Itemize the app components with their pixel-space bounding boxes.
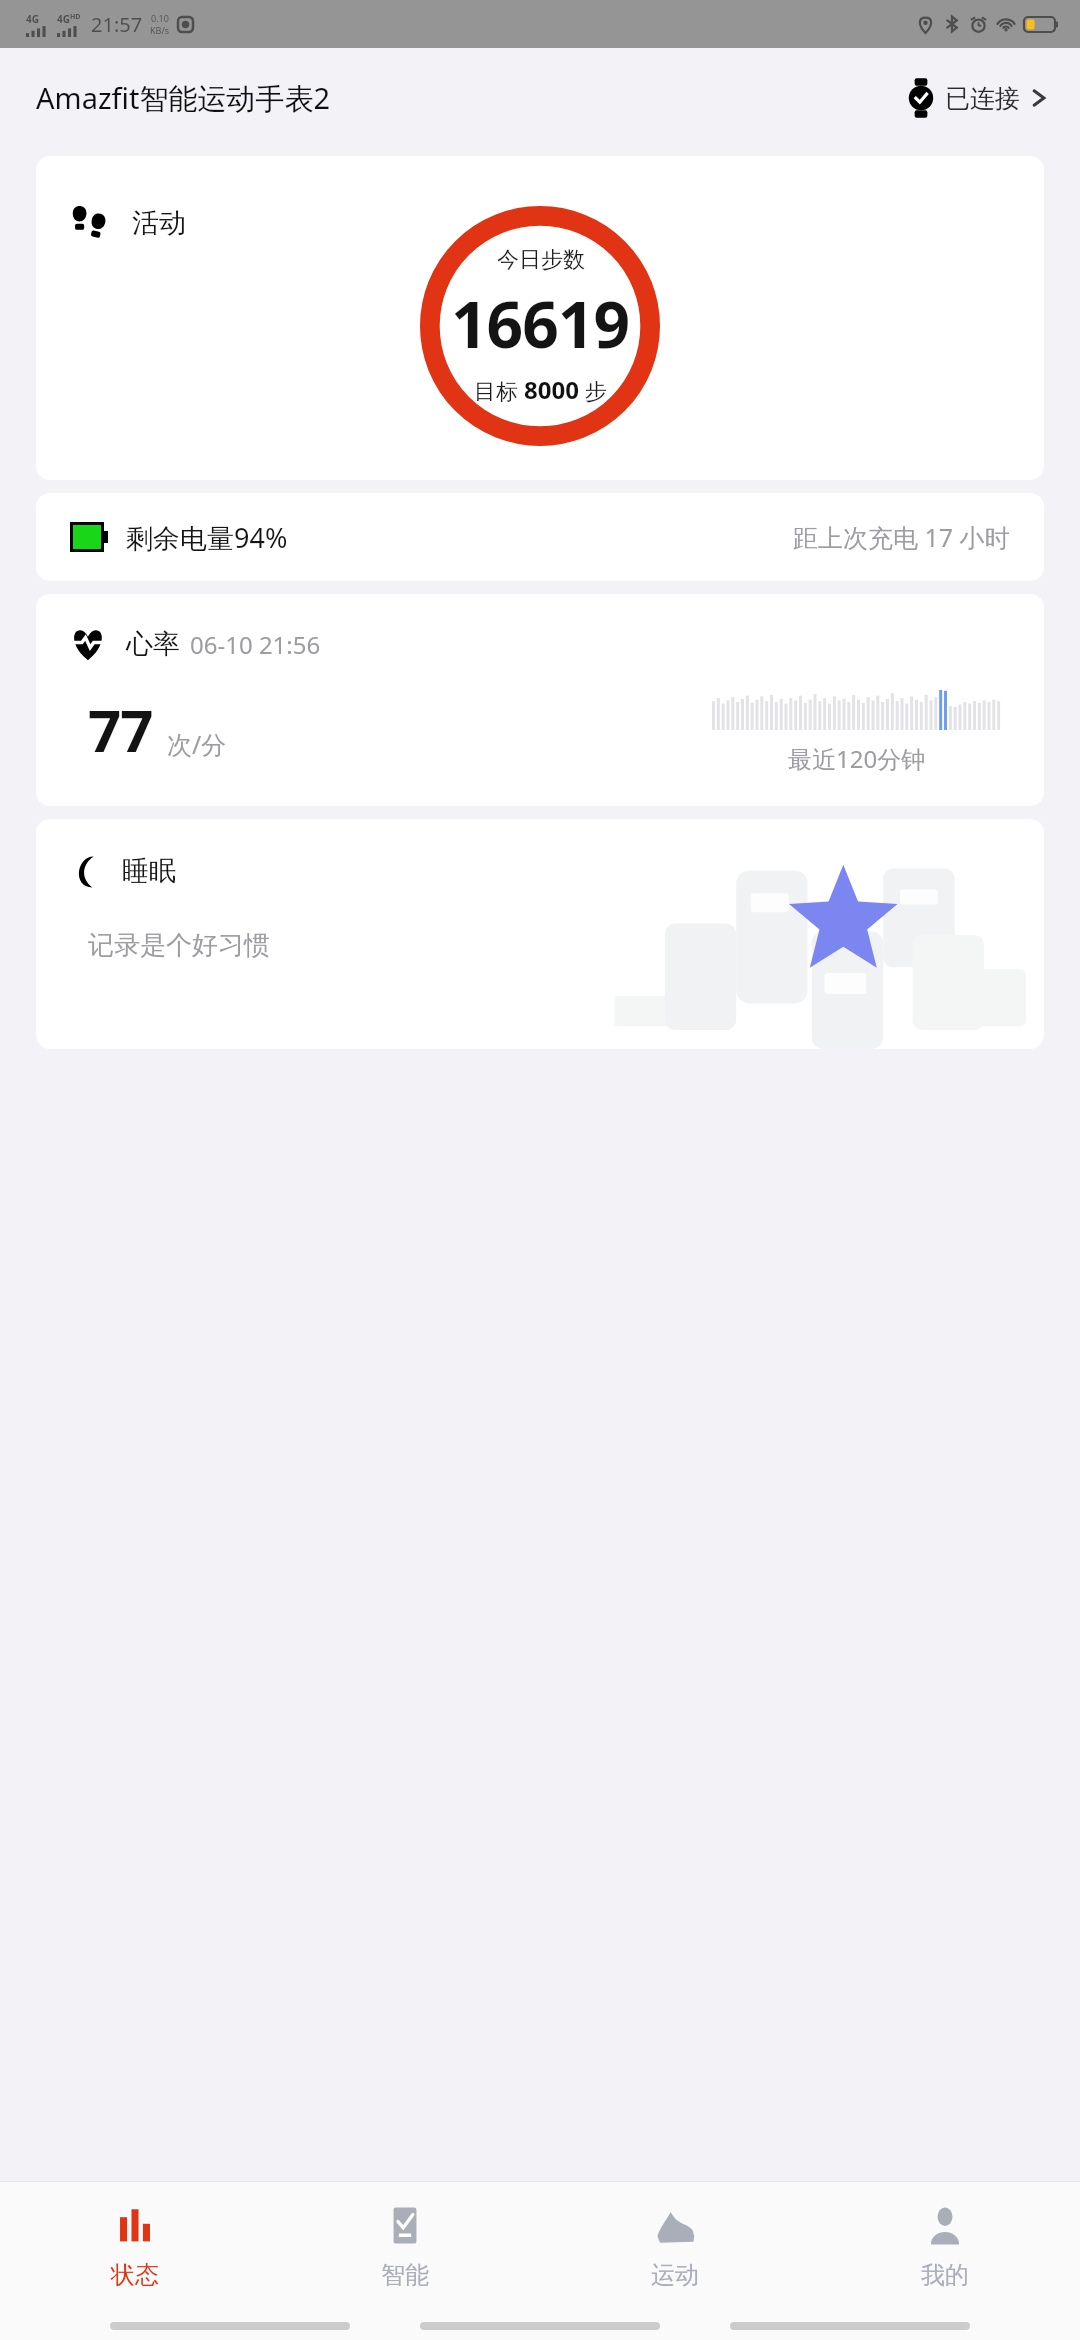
- staticText: 21:57: [91, 11, 143, 38]
- staticText: 状态: [111, 2260, 159, 2290]
- button[interactable]: 心率: [36, 594, 1044, 806]
- button[interactable]: 运动: [540, 2182, 810, 2322]
- button[interactable]: 活动: [36, 156, 1044, 480]
- staticText: 睡眠: [122, 854, 176, 888]
- staticText: 我的: [921, 2260, 969, 2290]
- staticText: 4G: [26, 12, 39, 26]
- staticText: 次/分: [167, 727, 227, 761]
- button[interactable]: 状态: [0, 2182, 270, 2322]
- staticText: 目标: [474, 375, 524, 405]
- staticText: 步: [579, 375, 607, 405]
- staticText: KB/s: [150, 24, 170, 36]
- staticText: 06-10 21:56: [190, 628, 321, 661]
- staticText: 16619: [451, 280, 630, 367]
- staticText: 记录是个好习惯: [88, 929, 270, 962]
- staticText: 最近120分钟: [788, 742, 926, 775]
- button[interactable]: 我的: [810, 2182, 1080, 2322]
- staticText: 活动: [132, 206, 186, 240]
- staticText: 剩余电量94%: [126, 519, 288, 556]
- button[interactable]: 智能: [270, 2182, 540, 2322]
- staticText: 77: [88, 690, 153, 769]
- staticText: 4G: [57, 12, 70, 26]
- button[interactable]: 睡眠: [36, 819, 1044, 1049]
- staticText: HD: [70, 12, 81, 22]
- button[interactable]: 已连接: [904, 76, 1050, 120]
- button[interactable]: 剩余电量94%: [36, 493, 1044, 581]
- staticText: 今日步数: [497, 246, 585, 274]
- staticText: 0.10: [151, 12, 169, 24]
- staticText: 距上次充电 17 小时: [793, 520, 1010, 554]
- staticText: 智能: [381, 2260, 429, 2290]
- staticText: 心率: [126, 627, 180, 661]
- staticText: 运动: [651, 2260, 699, 2290]
- staticText: 8000: [524, 373, 579, 406]
- staticText: Amazfit智能运动手表2: [36, 78, 331, 118]
- staticText: 已连接: [945, 83, 1020, 114]
